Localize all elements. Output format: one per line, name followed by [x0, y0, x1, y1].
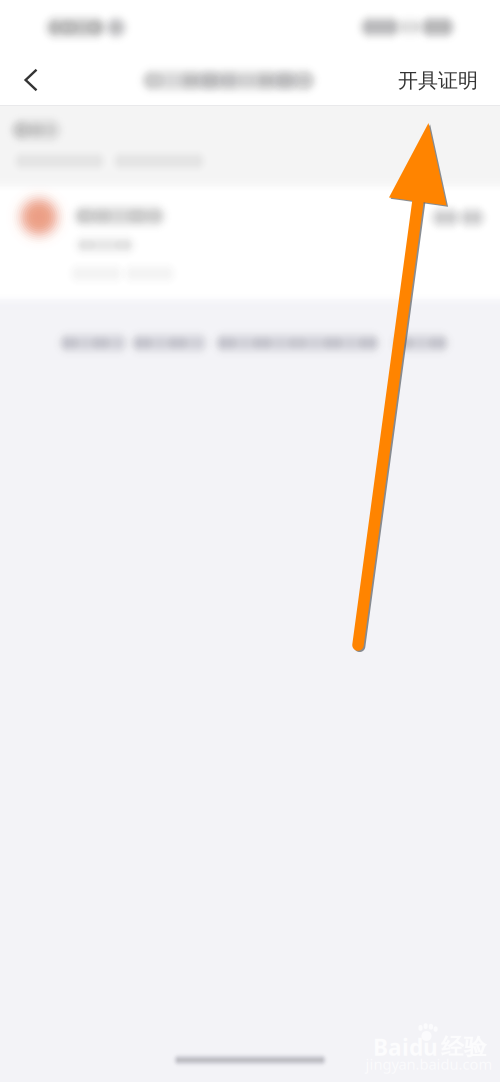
staticText: 经验 [441, 1033, 487, 1061]
button[interactable]: 开具证明 [378, 55, 498, 105]
staticText: Baidu [373, 1032, 438, 1062]
staticText: 开具证明 [398, 68, 478, 93]
button[interactable]: 返回 [4, 55, 58, 105]
